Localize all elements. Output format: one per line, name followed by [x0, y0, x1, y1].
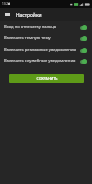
button[interactable]: Toggle setting	[80, 48, 87, 53]
button[interactable]: Toggle setting	[80, 59, 87, 64]
staticText: Вход по отпечатку пальца	[4, 24, 78, 30]
staticText: СОХРАНИТЬ	[36, 76, 58, 81]
staticText: Включить служебные уведомления	[4, 58, 78, 64]
button[interactable]: СОХРАНИТЬ	[9, 74, 84, 83]
button[interactable]: Toggle setting	[80, 25, 87, 30]
button[interactable]: Включить темную тему	[0, 32, 92, 44]
button[interactable]: Включить рекламные уведомления	[0, 44, 92, 56]
button[interactable]: Toggle setting	[80, 36, 87, 41]
staticText: Включить рекламные уведомления	[4, 47, 78, 53]
button[interactable]: Включить служебные уведомления	[0, 55, 92, 67]
staticText: Включить темную тему	[4, 35, 78, 41]
staticText: Настройки	[16, 12, 42, 19]
button[interactable]: Вход по отпечатку пальца	[0, 21, 92, 33]
staticText: 13:22	[2, 2, 10, 6]
button[interactable]: Open navigation menu	[0, 8, 14, 21]
